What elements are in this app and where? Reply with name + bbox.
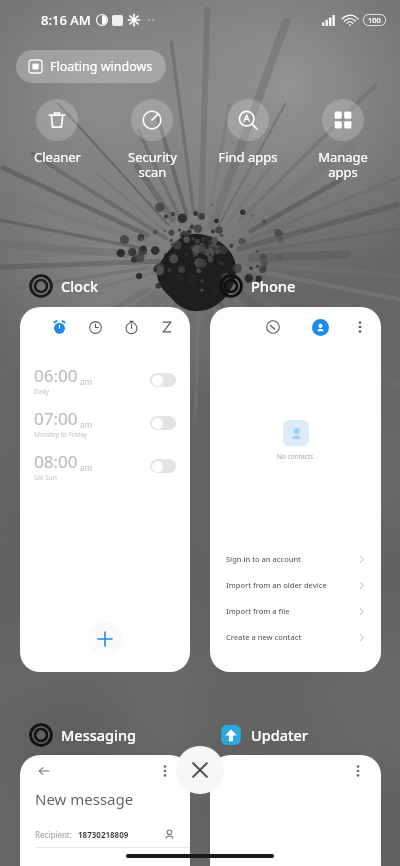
button[interactable]: Alarm [48,316,70,338]
button[interactable]: Sign in to an account [210,546,381,572]
staticText: Sign in to an account [226,554,301,564]
staticText: 07:00 [34,407,78,430]
button[interactable]: Import from an older device [210,572,381,598]
staticText: Monday to Friday [34,430,88,439]
staticText: 8:16 AM [41,11,91,29]
staticText: Clock [61,276,99,296]
button[interactable]: Timer [156,316,178,338]
button[interactable]: Stopwatch [120,316,142,338]
button[interactable]: Find apps [209,99,287,166]
staticText: Recipient: [35,829,72,840]
staticText: No contacts [277,452,314,461]
button[interactable]: More options [349,316,371,338]
staticText: Floating windows [50,58,153,75]
button[interactable]: Floating windows [16,50,166,83]
button[interactable]: Clock [28,273,99,299]
staticText: Create a new contact [226,632,302,642]
staticText: Cleaner [34,148,81,166]
button[interactable]: Messaging [28,722,137,748]
staticText: 100 [368,15,381,25]
staticText: 08:00 [34,450,78,473]
button[interactable]: Back [34,761,54,781]
button[interactable]: Alarm toggle [150,373,176,387]
button[interactable]: Security scan [113,99,191,181]
button[interactable]: Phone [218,273,296,299]
button[interactable]: 06:00 [20,359,190,401]
staticText: Sat Sun [34,473,57,482]
staticText: Manage apps [318,148,368,181]
staticText: Find apps [218,148,278,166]
button[interactable]: 07:00 [20,402,190,444]
staticText: Updater [251,725,308,745]
button[interactable]: Close all [176,746,224,794]
button[interactable]: Manage apps [304,99,382,181]
button[interactable]: More options [347,760,369,782]
staticText: New message [35,789,134,809]
staticText: Import from a file [226,606,290,616]
button[interactable]: Recents [262,316,284,338]
button[interactable]: World clock [84,316,106,338]
button[interactable]: Updater [218,722,308,748]
button[interactable]: Create a new contact [210,624,381,650]
staticText: Phone [251,276,296,296]
staticText: am [80,419,92,430]
staticText: Security scan [128,148,177,181]
staticText: Messaging [61,725,137,745]
staticText: 18730218809 [78,829,129,840]
staticText: Daily [34,387,50,396]
button[interactable]: Alarm toggle [150,416,176,430]
button[interactable]: Alarm toggle [150,459,176,473]
button[interactable]: Cleaner [18,99,96,166]
button[interactable]: More options [154,760,176,782]
staticText: 06:00 [34,364,78,387]
button[interactable]: 08:00 [20,445,190,487]
button[interactable]: Import from a file [210,598,381,624]
staticText: am [80,462,92,473]
button[interactable]: Contacts [312,319,329,336]
staticText: am [80,376,92,387]
button[interactable]: Add alarm [88,622,122,656]
staticText: Import from an older device [226,580,327,590]
